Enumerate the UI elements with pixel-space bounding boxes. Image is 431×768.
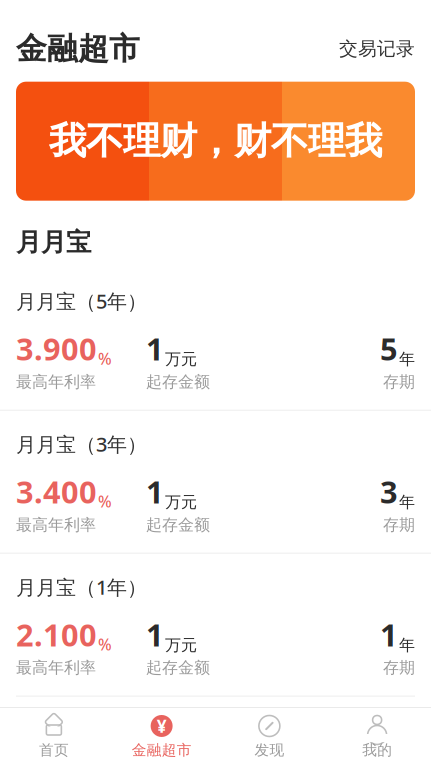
staticText: 交易记录 [339, 37, 415, 60]
staticText: 3.900 [16, 328, 97, 369]
staticText: 2.100 [16, 614, 97, 655]
staticText: 年 [399, 349, 415, 369]
button[interactable]: 月月宝（5年） [0, 268, 431, 410]
staticText: % [98, 491, 112, 512]
staticText: 起存金额 [146, 515, 210, 535]
staticText: 起存金额 [146, 372, 210, 392]
staticText: 万元 [165, 492, 197, 512]
button[interactable]: 月月宝（1年） [0, 553, 431, 696]
staticText: ¥ [157, 714, 167, 737]
staticText: 我的 [362, 741, 392, 759]
button[interactable]: 首页 [0, 708, 108, 768]
staticText: 发现 [254, 741, 284, 759]
staticText: 月月宝（5年） [16, 288, 147, 314]
staticText: 首页 [39, 741, 69, 759]
staticText: 存期 [383, 515, 415, 535]
staticText: 1 [146, 471, 164, 512]
staticText: 3 [380, 471, 398, 512]
button[interactable]: 我不理财，财不理我 [0, 82, 431, 201]
staticText: 月月宝 [16, 227, 91, 258]
staticText: 5 [380, 328, 398, 369]
staticText: 金融超市 [132, 741, 192, 759]
button[interactable]: 发现 [215, 708, 323, 768]
staticText: 1 [146, 328, 164, 369]
staticText: 定期存款 [16, 723, 116, 754]
staticText: % [98, 348, 112, 369]
button[interactable]: 我的 [323, 708, 431, 768]
staticText: 1 [146, 614, 164, 655]
staticText: 查看更多 [351, 728, 415, 748]
staticText: % [98, 634, 112, 655]
staticText: 存期 [383, 658, 415, 678]
staticText: 万元 [165, 349, 197, 369]
staticText: 存期 [383, 372, 415, 392]
staticText: 起存金额 [146, 658, 210, 678]
staticText: 年 [399, 492, 415, 512]
staticText: 我不理财，财不理我 [49, 118, 382, 164]
button[interactable]: ¥ [108, 708, 216, 768]
staticText: 最高年利率 [16, 372, 96, 392]
button[interactable]: 月月宝（3年） [0, 410, 431, 553]
button[interactable]: 交易记录 [339, 37, 415, 60]
staticText: 金融超市 [16, 30, 140, 68]
staticText: 最高年利率 [16, 515, 96, 535]
staticText: 月月宝（3年） [16, 431, 147, 457]
staticText: 3.400 [16, 471, 97, 512]
staticText: 最高年利率 [16, 658, 96, 678]
staticText: 万元 [165, 635, 197, 655]
staticText: 年 [399, 635, 415, 655]
button[interactable]: 查看更多 [351, 728, 415, 748]
staticText: 1 [380, 614, 398, 655]
staticText: 月月宝（1年） [16, 574, 147, 600]
